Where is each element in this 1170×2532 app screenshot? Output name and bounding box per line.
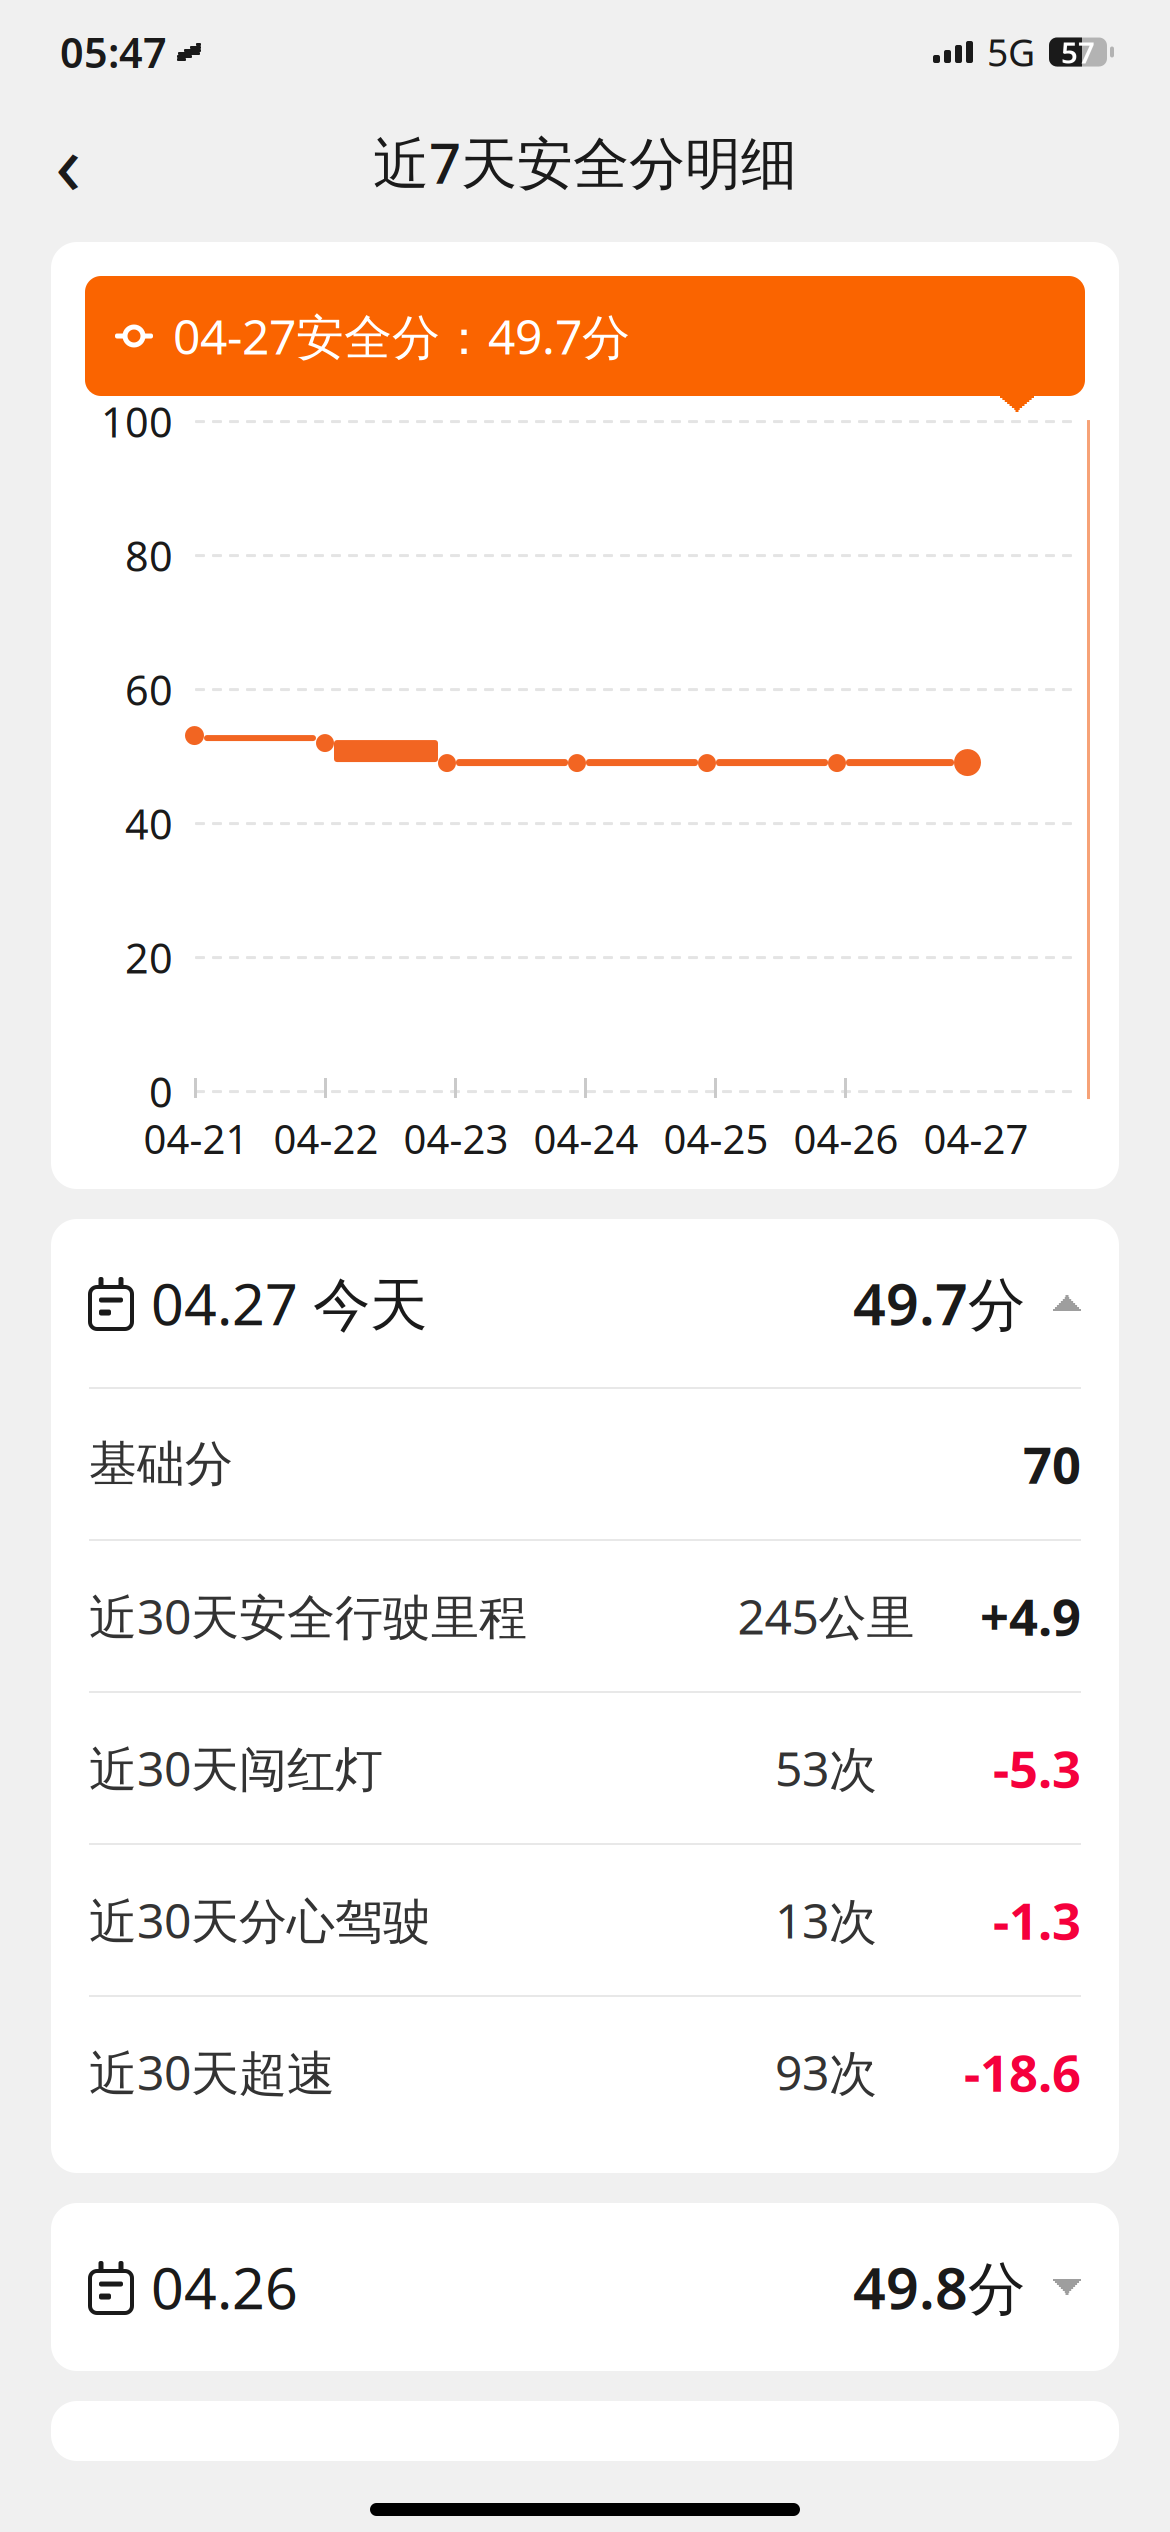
staticText: 04.27 今天 [151, 1265, 427, 1341]
staticText: 近30天分心驾驶 [89, 1888, 431, 1952]
staticText: 04-27安全分：49.7分 [173, 304, 630, 368]
staticText: ‹ [55, 105, 81, 219]
staticText: 0 [149, 1064, 173, 1119]
staticText: 基础分 [89, 1434, 233, 1493]
staticText: 04-27 [923, 1112, 1028, 1165]
staticText: 70 [1023, 1430, 1081, 1498]
staticText: 近30天安全行驶里程 [89, 1584, 527, 1648]
button[interactable]: 04.27 今天 [89, 1219, 1081, 1387]
staticText: -5.3 [993, 1734, 1081, 1802]
staticText: -1.3 [993, 1886, 1081, 1954]
button[interactable]: 04.26 [89, 2203, 1081, 2371]
staticText: 57 [1061, 32, 1095, 71]
staticText: 04-22 [273, 1112, 378, 1165]
staticText: 05:47 [60, 25, 167, 79]
staticText: 100 [101, 394, 173, 449]
staticText: 04-24 [533, 1112, 638, 1165]
staticText: 近30天超速 [89, 2040, 335, 2104]
staticText: 5G [987, 27, 1035, 77]
staticText: 近7天安全分明细 [373, 125, 797, 199]
staticText: 245公里 [737, 1584, 914, 1648]
button[interactable]: Back [20, 114, 116, 210]
staticText: 04-21 [143, 1112, 248, 1165]
staticText: 20 [125, 930, 173, 985]
staticText: 13次 [775, 1888, 877, 1952]
staticText: 49.7分 [853, 1265, 1025, 1341]
staticText: 04-26 [793, 1112, 898, 1165]
staticText: 近30天闯红灯 [89, 1736, 383, 1800]
staticText: 93次 [775, 2040, 877, 2104]
staticText: +4.9 [980, 1582, 1081, 1650]
staticText: 53次 [775, 1736, 877, 1800]
staticText: -18.6 [964, 2038, 1081, 2106]
staticText: 04-23 [403, 1112, 508, 1165]
staticText: 40 [125, 796, 173, 851]
staticText: 80 [125, 528, 173, 583]
staticText: 49.8分 [853, 2249, 1025, 2325]
staticText: 60 [125, 662, 173, 717]
staticText: 04.26 [151, 2249, 298, 2325]
staticText: 04-25 [663, 1112, 768, 1165]
